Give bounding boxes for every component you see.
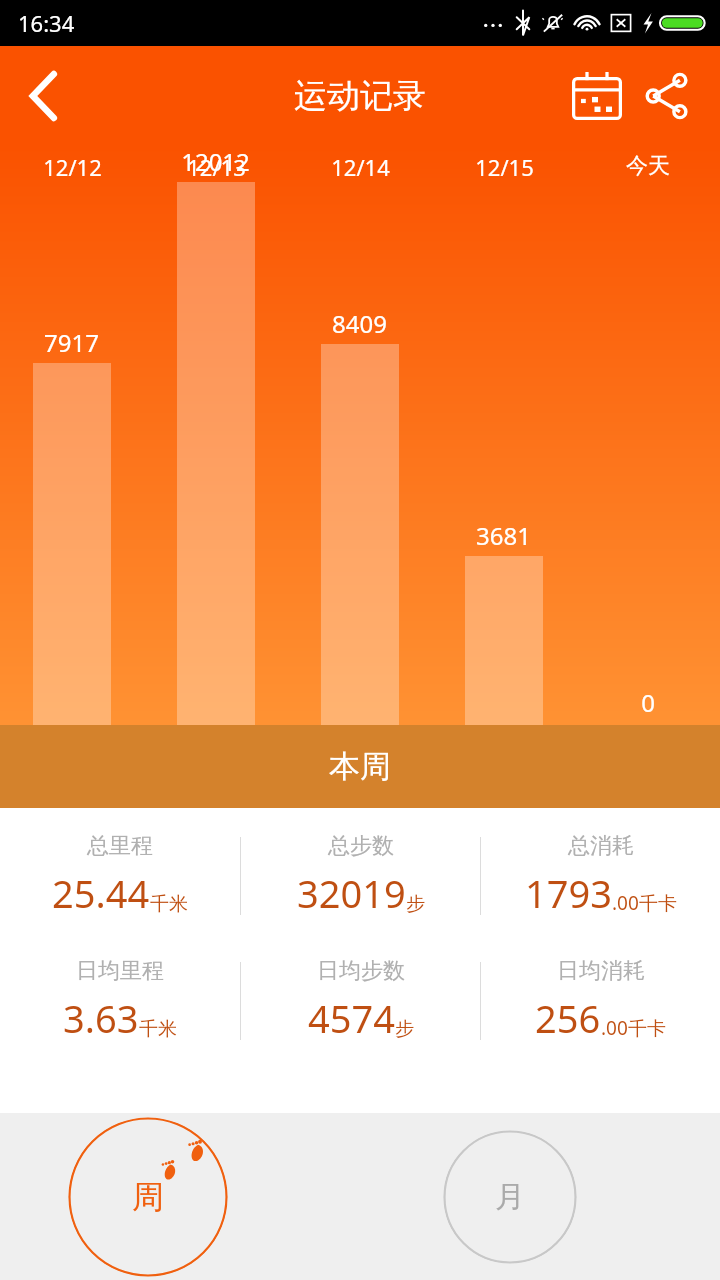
staticText: 8409 <box>332 307 387 340</box>
staticText: 千卡 <box>628 1017 666 1041</box>
button[interactable]: 总步数 <box>241 832 480 919</box>
staticText: 25.44 <box>52 867 150 919</box>
staticText: 总里程 <box>87 832 153 860</box>
staticText: 4574 <box>308 992 395 1044</box>
button[interactable]: 总里程 <box>0 832 240 919</box>
staticText: 本周 <box>329 747 391 786</box>
staticText: 千米 <box>139 1017 177 1041</box>
staticText: 周 <box>132 1177 164 1217</box>
button[interactable]: 周 <box>68 1117 228 1277</box>
staticText: 12/12 <box>43 152 102 182</box>
staticText: 日均消耗 <box>557 957 645 985</box>
staticText: .00 <box>612 890 639 916</box>
staticText: 12/13 <box>187 152 246 182</box>
staticText: 3.63 <box>63 992 139 1044</box>
staticText: 今天 <box>626 152 670 180</box>
staticText: 16:34 <box>18 8 75 38</box>
staticText: 千米 <box>150 892 188 916</box>
button[interactable]: Back <box>0 46 86 146</box>
button[interactable]: 月 <box>443 1130 577 1264</box>
staticText: 32019 <box>297 867 406 919</box>
staticText: 7917 <box>44 326 99 359</box>
staticText: 总步数 <box>328 832 394 860</box>
button[interactable]: Calendar <box>562 46 632 146</box>
staticText: 12012 <box>181 145 250 178</box>
staticText: 12/15 <box>475 152 534 182</box>
button[interactable]: 本周 <box>0 725 720 808</box>
button[interactable]: 日均步数 <box>241 957 480 1044</box>
button[interactable]: 总消耗 <box>481 832 720 919</box>
staticText: 1793 <box>525 867 612 919</box>
button[interactable]: 日均里程 <box>0 957 240 1044</box>
staticText: .00 <box>601 1015 628 1041</box>
staticText: 总消耗 <box>568 832 634 860</box>
staticText: 千卡 <box>639 892 677 916</box>
staticText: 步 <box>395 1017 414 1041</box>
staticText: 运动记录 <box>294 75 426 117</box>
staticText: 12/14 <box>331 152 390 182</box>
staticText: 日均步数 <box>317 957 405 985</box>
staticText: 0 <box>641 686 655 719</box>
button[interactable]: 日均消耗 <box>481 957 720 1044</box>
button[interactable]: Share <box>632 46 702 146</box>
staticText: 日均里程 <box>76 957 164 985</box>
staticText: 月 <box>495 1178 525 1216</box>
staticText: 3681 <box>476 519 531 552</box>
staticText: 步 <box>406 892 425 916</box>
staticText: 256 <box>535 992 601 1044</box>
